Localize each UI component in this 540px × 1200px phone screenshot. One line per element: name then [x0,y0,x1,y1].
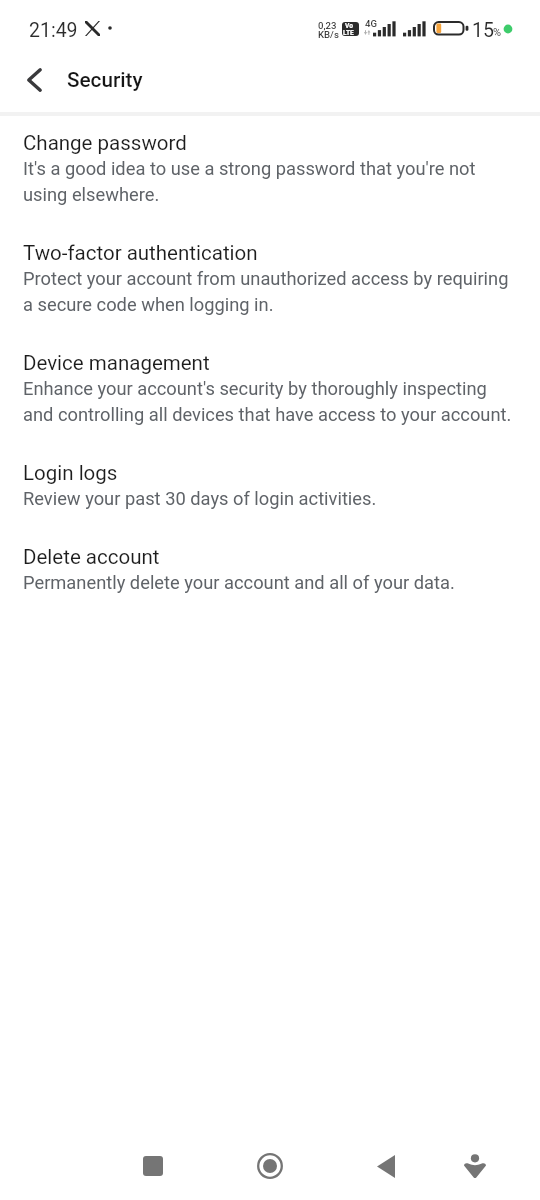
staticText: Change password [23,132,187,155]
button[interactable]: Recent apps [121,1134,185,1198]
staticText: 15 [472,19,494,42]
button[interactable]: Two-factor authentication [0,242,540,317]
button[interactable]: Back [354,1134,418,1198]
staticText: Vo [345,22,353,30]
staticText: Two-factor authentication [23,242,258,265]
button[interactable]: Delete account [0,546,540,595]
button[interactable]: Hide keyboard [443,1134,507,1198]
staticText: 4G [365,18,377,29]
button[interactable]: Change password [0,132,540,207]
staticText: Enhance your account's security by thoro… [23,374,514,426]
button[interactable]: Home [238,1134,302,1198]
staticText: 0,23 [318,20,337,31]
staticText: 21:49 [29,19,78,42]
staticText: Permanently delete your account and all … [23,568,455,594]
button[interactable]: Login logs [0,462,540,511]
staticText: Security [67,68,143,92]
staticText: KB/s [318,29,339,40]
staticText: Delete account [23,546,160,569]
staticText: Device management [23,352,210,375]
staticText: LTE [343,29,354,36]
button[interactable]: Device management [0,352,540,427]
button[interactable]: Back [8,54,60,106]
staticText: Review your past 30 days of login activi… [23,484,377,510]
staticText: Login logs [23,462,118,485]
staticText: % [493,26,502,39]
staticText: It's a good idea to use a strong passwor… [23,154,514,206]
staticText: Protect your account from unauthorized a… [23,264,514,316]
